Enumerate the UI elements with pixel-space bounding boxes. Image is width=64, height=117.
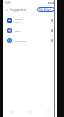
staticText: Shared: [15, 17, 23, 20]
button[interactable]: Docs: [3, 25, 57, 35]
button[interactable]: Home: [3, 106, 21, 117]
staticText: 9:41: [5, 1, 11, 5]
button[interactable]: Starred: [21, 106, 39, 117]
button[interactable]: More options: [50, 18, 54, 22]
staticText: Docs: [15, 29, 21, 32]
staticText: Presentat: [15, 39, 26, 42]
button[interactable]: Presentat: [3, 35, 57, 45]
button[interactable]: More options: [50, 38, 54, 42]
staticText: Suggested: [10, 8, 26, 12]
button[interactable]: Files: [39, 106, 57, 117]
staticText: My Drive: [39, 8, 51, 12]
button[interactable]: Shared: [3, 15, 57, 25]
button[interactable]: More options: [50, 28, 54, 32]
staticText: Aug 1: [15, 21, 21, 24]
button[interactable]: My Drive: [37, 7, 55, 12]
button[interactable]: Menu: [4, 7, 9, 12]
